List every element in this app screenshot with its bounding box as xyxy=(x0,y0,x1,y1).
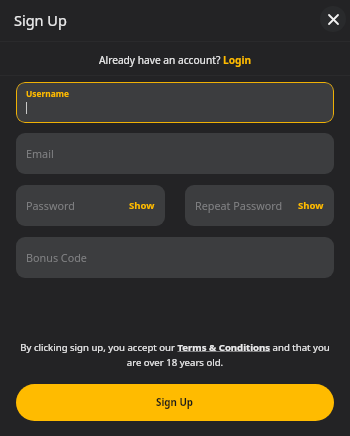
staticText: Sign Up xyxy=(14,10,67,30)
staticText: Sign Up xyxy=(156,396,194,409)
button[interactable]: Repeat Password xyxy=(185,185,334,226)
staticText: Email xyxy=(26,146,54,161)
button[interactable]: Password xyxy=(16,185,165,226)
button[interactable]: Login xyxy=(223,53,252,67)
button[interactable]: Email xyxy=(16,133,334,174)
staticText: Username xyxy=(26,88,69,99)
button[interactable]: Show xyxy=(129,199,155,212)
staticText: Already have an account? xyxy=(99,53,223,67)
staticText: Password xyxy=(26,198,75,213)
staticText: By clicking sign up, you accept our Term… xyxy=(12,341,338,369)
button[interactable]: Bonus Code xyxy=(16,237,334,278)
staticText: Login xyxy=(223,53,252,67)
button[interactable]: Sign Up xyxy=(16,384,334,421)
staticText: Repeat Password xyxy=(195,198,283,213)
button[interactable]: Close xyxy=(320,6,346,32)
button[interactable]: Username xyxy=(16,82,334,123)
staticText: Bonus Code xyxy=(26,250,87,265)
button[interactable]: Show xyxy=(298,199,324,212)
